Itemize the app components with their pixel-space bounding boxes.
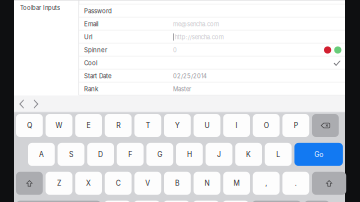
staticText: Rank xyxy=(84,85,98,93)
staticText: V xyxy=(145,179,150,187)
button[interactable]: Space xyxy=(222,201,249,202)
staticText: W xyxy=(55,121,62,130)
button[interactable]: A xyxy=(28,143,55,166)
staticText: Cool xyxy=(84,59,97,67)
button[interactable]: Space xyxy=(163,201,190,202)
staticText: F xyxy=(128,150,132,159)
button[interactable]: V xyxy=(134,172,161,195)
button[interactable]: G xyxy=(146,143,173,166)
button[interactable]: P xyxy=(282,114,309,137)
staticText: T xyxy=(146,121,150,130)
staticText: Master xyxy=(173,85,191,93)
button[interactable]: J xyxy=(206,143,232,166)
staticText: D xyxy=(98,150,103,159)
button[interactable]: Decrease xyxy=(324,46,331,54)
button[interactable]: Password xyxy=(79,4,345,17)
button[interactable]: Rank xyxy=(79,82,345,95)
button[interactable]: Shift xyxy=(16,172,43,195)
button[interactable]: Delete xyxy=(312,114,339,137)
button[interactable]: Email xyxy=(79,17,345,30)
staticText: O xyxy=(264,121,269,130)
button[interactable]: Space xyxy=(193,201,219,202)
button[interactable]: U xyxy=(194,114,220,137)
staticText: L xyxy=(276,150,280,159)
staticText: I xyxy=(236,121,238,130)
button[interactable]: Start Date xyxy=(79,69,345,82)
staticText: R xyxy=(116,121,120,130)
staticText: P xyxy=(294,121,298,130)
button[interactable]: Space xyxy=(104,201,131,202)
button[interactable]: H xyxy=(176,143,203,166)
staticText: X xyxy=(86,179,91,187)
button[interactable]: L xyxy=(265,143,292,166)
staticText: B xyxy=(175,179,180,187)
staticText: Password xyxy=(84,7,112,15)
staticText: H xyxy=(187,150,192,159)
button[interactable]: N xyxy=(194,172,220,195)
staticText: S xyxy=(69,150,73,159)
button[interactable]: Cool xyxy=(79,56,345,69)
staticText: 0 xyxy=(173,46,177,54)
staticText: Url xyxy=(84,33,92,41)
staticText: http://sencha.com xyxy=(175,33,224,41)
staticText: M xyxy=(234,179,240,187)
button[interactable]: Previous field xyxy=(18,99,25,109)
staticText: J xyxy=(217,150,221,159)
button[interactable]: E xyxy=(75,114,102,137)
staticText: . xyxy=(295,179,297,187)
button[interactable]: . xyxy=(282,172,309,195)
button[interactable]: , xyxy=(253,172,280,195)
staticText: K xyxy=(246,150,251,159)
button[interactable]: Increase xyxy=(334,46,341,54)
button[interactable]: Z xyxy=(46,172,72,195)
button[interactable]: K xyxy=(235,143,262,166)
button[interactable]: C xyxy=(105,172,132,195)
button[interactable]: Numbers xyxy=(16,201,101,202)
staticText: Z xyxy=(57,179,61,187)
staticText: Start Date xyxy=(84,72,112,80)
staticText: G xyxy=(157,150,162,159)
staticText: Email xyxy=(84,20,98,28)
staticText: Toolbar Inputs xyxy=(20,4,60,11)
button[interactable]: F xyxy=(117,143,144,166)
button[interactable]: B xyxy=(164,172,191,195)
staticText: 02/25/2014 xyxy=(173,72,207,80)
button[interactable]: Shift xyxy=(312,172,346,195)
button[interactable]: Url xyxy=(79,30,345,43)
button[interactable]: R xyxy=(105,114,132,137)
button[interactable]: W xyxy=(46,114,72,137)
staticText: Go xyxy=(314,150,323,159)
button[interactable]: S xyxy=(58,143,84,166)
button[interactable]: Next field xyxy=(33,99,40,109)
button[interactable]: X xyxy=(75,172,102,195)
staticText: Q xyxy=(27,121,32,130)
button[interactable]: M xyxy=(223,172,250,195)
button[interactable]: Hide keyboard xyxy=(304,201,330,202)
button[interactable]: Space xyxy=(133,201,160,202)
button[interactable]: O xyxy=(253,114,280,137)
staticText: E xyxy=(87,121,91,130)
button[interactable]: Numbers xyxy=(252,201,301,202)
staticText: , xyxy=(265,179,267,187)
button[interactable]: D xyxy=(87,143,114,166)
staticText: me@sencha.com xyxy=(173,20,219,28)
staticText: U xyxy=(204,121,209,130)
button[interactable]: Q xyxy=(16,114,43,137)
button[interactable]: T xyxy=(134,114,161,137)
button[interactable]: Y xyxy=(164,114,191,137)
staticText: A xyxy=(39,150,44,159)
staticText: C xyxy=(116,179,121,187)
staticText: Y xyxy=(175,121,180,130)
button[interactable]: Go xyxy=(294,143,343,166)
staticText: N xyxy=(204,179,209,187)
staticText: Spinner xyxy=(84,46,107,54)
button[interactable]: Spinner xyxy=(79,43,345,56)
button[interactable]: I xyxy=(223,114,250,137)
